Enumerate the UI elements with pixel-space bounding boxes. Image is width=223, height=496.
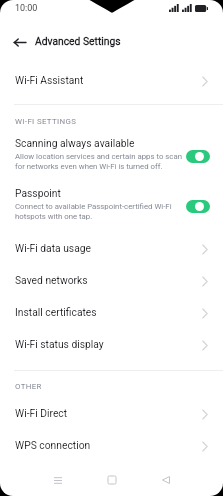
button[interactable]: WPS connection bbox=[0, 431, 223, 461]
button[interactable]: Recent apps bbox=[38, 466, 78, 494]
staticText: Wi-Fi status display bbox=[15, 338, 104, 350]
staticText: Connect to available Passpoint-certified… bbox=[15, 202, 172, 211]
button[interactable]: Back bbox=[146, 466, 186, 494]
staticText: WPS connection bbox=[15, 439, 91, 451]
staticText: Saved networks bbox=[15, 274, 88, 286]
button[interactable]: Saved networks bbox=[0, 266, 223, 296]
staticText: Passpoint bbox=[15, 187, 61, 199]
button[interactable]: Toggle Scanning always available bbox=[186, 150, 210, 163]
button[interactable]: Wi-Fi Direct bbox=[0, 399, 223, 429]
button[interactable]: Wi-Fi data usage bbox=[0, 234, 223, 264]
staticText: Scanning always available bbox=[15, 137, 135, 149]
staticText: Wi-Fi Assistant bbox=[15, 74, 84, 86]
staticText: Wi-Fi Direct bbox=[15, 407, 68, 419]
staticText: WI-FI SETTINGS bbox=[15, 117, 77, 126]
staticText: Allow location services and certain apps… bbox=[15, 152, 182, 161]
button[interactable]: Passpoint bbox=[0, 181, 223, 223]
button[interactable]: Home bbox=[92, 466, 132, 494]
staticText: for networks even when Wi-Fi is turned o… bbox=[15, 162, 163, 171]
staticText: hotspots with one tap. bbox=[15, 212, 93, 221]
button[interactable]: Toggle Passpoint bbox=[186, 200, 210, 213]
staticText: Install certificates bbox=[15, 306, 97, 318]
button[interactable]: Scanning always available bbox=[0, 131, 223, 173]
button[interactable]: Navigate up bbox=[6, 29, 32, 55]
staticText: OTHER bbox=[15, 382, 42, 391]
button[interactable]: Install certificates bbox=[0, 298, 223, 328]
staticText: Wi-Fi data usage bbox=[15, 242, 91, 254]
button[interactable]: Wi-Fi status display bbox=[0, 330, 223, 360]
staticText: Advanced Settings bbox=[35, 35, 121, 47]
button[interactable]: Wi-Fi Assistant bbox=[0, 66, 223, 96]
staticText: 10:00 bbox=[15, 3, 38, 14]
